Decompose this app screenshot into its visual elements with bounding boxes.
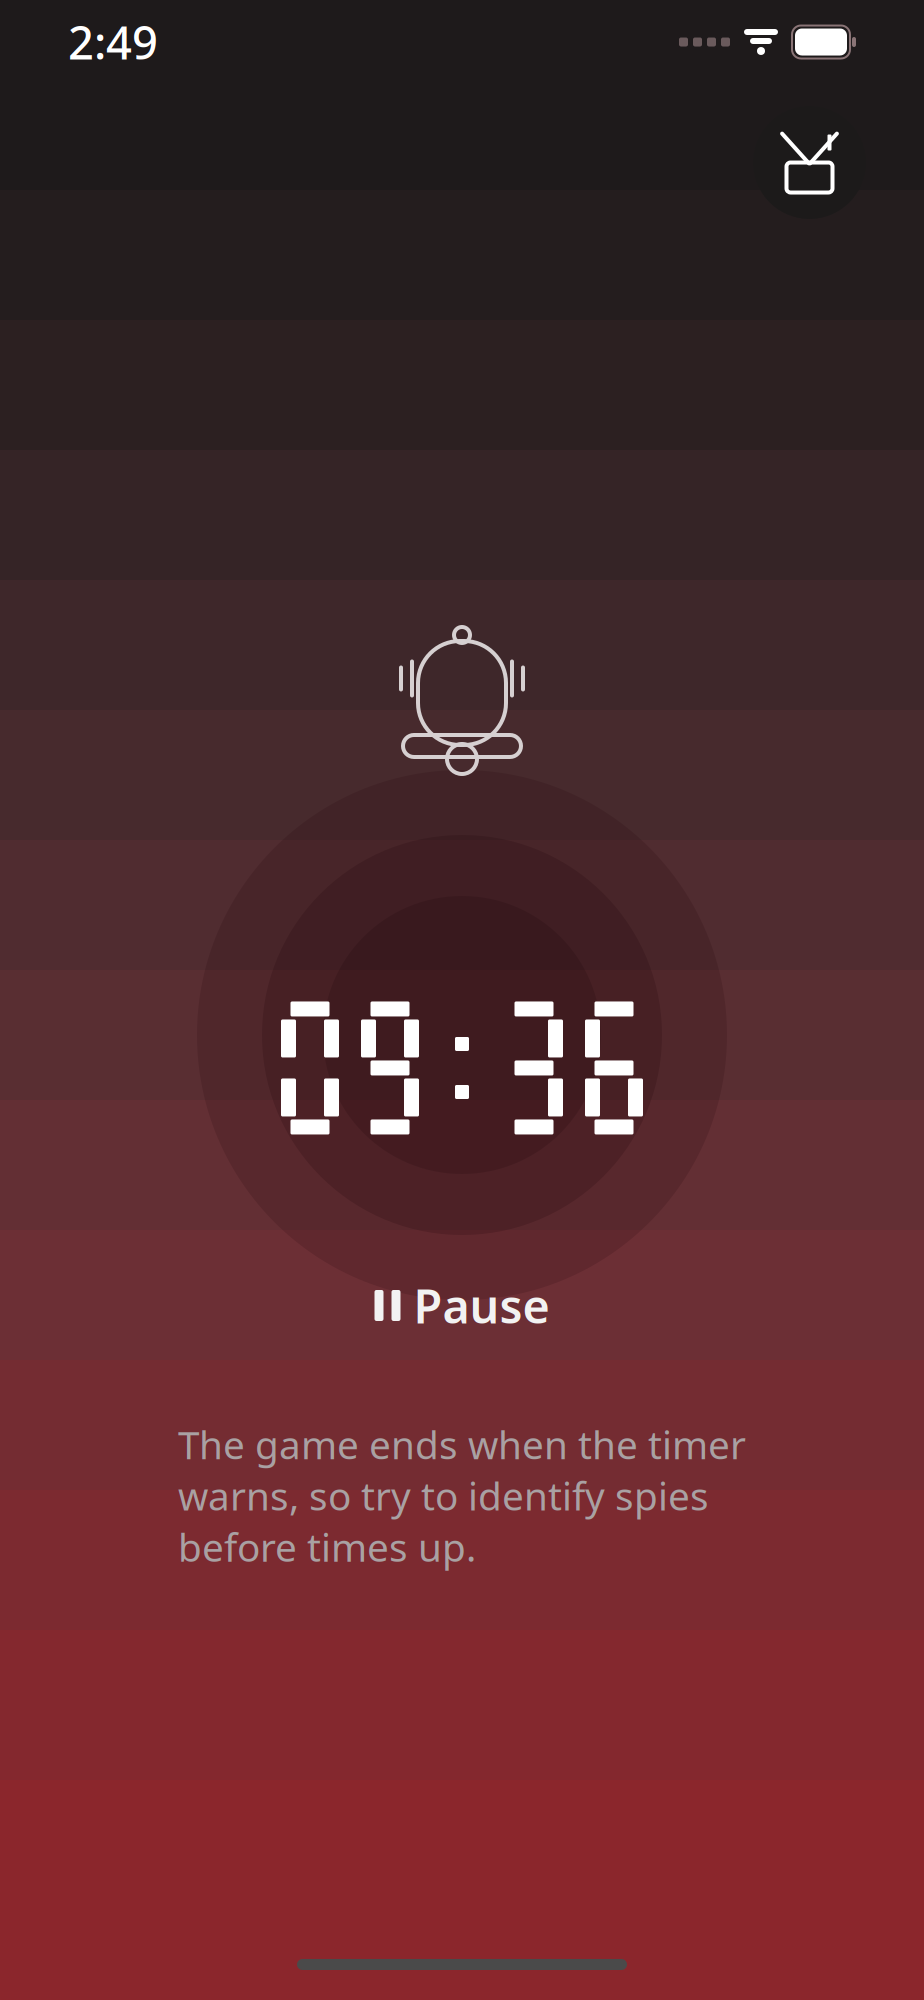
button[interactable]: Pause xyxy=(348,1260,575,1350)
staticText: Pause xyxy=(413,1274,549,1336)
button[interactable]: Home xyxy=(753,106,866,219)
staticText: 2:49 xyxy=(68,12,158,72)
staticText: The game ends when the timer warns, so t… xyxy=(178,1418,746,1572)
